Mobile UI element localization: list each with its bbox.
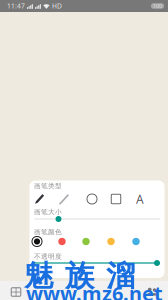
- button[interactable]: [105, 192, 127, 206]
- button[interactable]: Layers: [2, 281, 30, 300]
- staticText: 画笔类型: [34, 182, 62, 190]
- staticText: www.mz6.net: [26, 280, 163, 300]
- button[interactable]: [28, 192, 50, 206]
- button[interactable]: [81, 192, 103, 206]
- button[interactable]: [51, 235, 73, 247]
- button[interactable]: Collaborators: [138, 281, 166, 300]
- staticText: 魅: [24, 258, 53, 294]
- staticText: 画笔大小: [34, 208, 62, 216]
- staticText: 族: [65, 258, 94, 294]
- staticText: 溜: [106, 258, 135, 294]
- button[interactable]: [26, 235, 48, 247]
- button[interactable]: [100, 235, 122, 247]
- staticText: 100: [153, 2, 162, 10]
- staticText: 不透明度: [34, 252, 62, 261]
- staticText: A: [136, 191, 144, 207]
- button[interactable]: [53, 192, 75, 206]
- button[interactable]: A: [129, 192, 151, 206]
- button[interactable]: [125, 235, 147, 247]
- button[interactable]: [75, 235, 97, 247]
- staticText: HD: [52, 2, 62, 10]
- staticText: 画笔颜色: [34, 228, 62, 236]
- staticText: 11:47: [7, 2, 25, 10]
